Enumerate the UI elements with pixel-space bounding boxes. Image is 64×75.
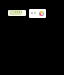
button[interactable]	[8, 10, 26, 16]
button[interactable]	[29, 9, 46, 18]
